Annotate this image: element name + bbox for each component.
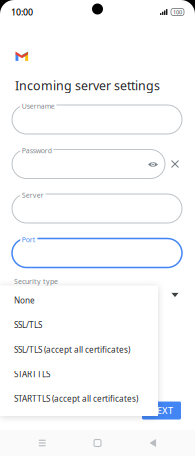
button[interactable]: STARTTLS [0,362,158,386]
button[interactable]: Home [84,434,110,452]
button[interactable]: Security type menu [169,290,181,300]
staticText: SSL/TLS (accept all certificates) [14,344,130,355]
staticText: None [14,295,35,306]
staticText: STARTTLS [14,369,50,380]
staticText: Incoming server settings [15,77,160,94]
button[interactable]: SSL/TLS [0,313,158,337]
staticText: 100 [173,8,182,16]
button[interactable]: SSL/TLS (accept all certificates) [0,337,158,362]
staticText: Server [22,190,44,200]
staticText: Username [22,101,55,111]
staticText: 10:00 [11,6,33,18]
button[interactable]: None [0,288,158,313]
staticText: NEXT [150,404,173,417]
button[interactable]: Back [140,434,166,452]
staticText: Password [22,146,52,155]
staticText: SSL/TLS [14,319,42,330]
button[interactable]: STARTTLS (accept all certificates) [0,386,158,411]
staticText: Port [22,235,36,244]
staticText: STARTTLS (accept all certificates) [14,393,138,404]
staticText: Security type [14,276,58,286]
button[interactable]: NEXT [142,401,181,419]
button[interactable]: Clear password [168,157,182,171]
button[interactable]: Recents [29,434,55,452]
